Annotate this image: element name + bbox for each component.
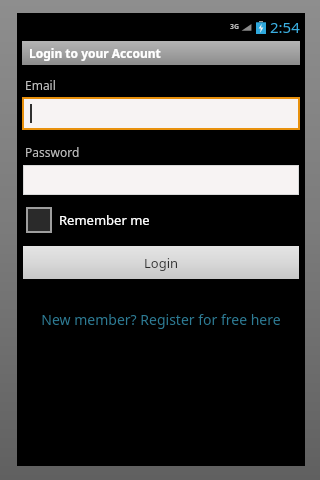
- staticText: Email: [25, 77, 56, 93]
- staticText: 2:54: [270, 17, 300, 37]
- staticText: Remember me: [59, 211, 150, 229]
- staticText: Password: [25, 144, 80, 160]
- button[interactable]: Login: [23, 246, 299, 279]
- button[interactable]: Remember me: [26, 207, 150, 233]
- button[interactable]: New member? Register for free here: [22, 310, 300, 329]
- staticText: Login: [144, 254, 179, 272]
- button[interactable]: [24, 99, 298, 128]
- staticText: Login to your Account: [29, 45, 161, 61]
- staticText: New member? Register for free here: [41, 310, 281, 329]
- staticText: 3G: [230, 22, 240, 32]
